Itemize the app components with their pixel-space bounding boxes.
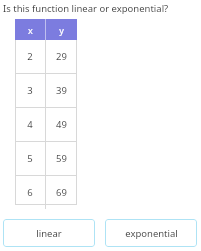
staticText: 2: [27, 50, 33, 63]
button[interactable]: exponential: [105, 219, 197, 247]
staticText: 6: [27, 186, 33, 199]
staticText: y: [59, 24, 64, 36]
staticText: x: [28, 24, 33, 36]
staticText: exponential: [125, 227, 178, 240]
staticText: 5: [27, 152, 33, 165]
staticText: 4: [27, 118, 33, 131]
staticText: 59: [56, 152, 67, 165]
button[interactable]: linear: [3, 219, 95, 247]
staticText: 69: [56, 186, 67, 199]
staticText: Is this function linear or exponential?: [3, 2, 169, 15]
staticText: 29: [56, 50, 67, 63]
staticText: linear: [36, 227, 62, 240]
staticText: 49: [56, 118, 67, 131]
staticText: 39: [56, 84, 67, 97]
staticText: 3: [27, 84, 33, 97]
